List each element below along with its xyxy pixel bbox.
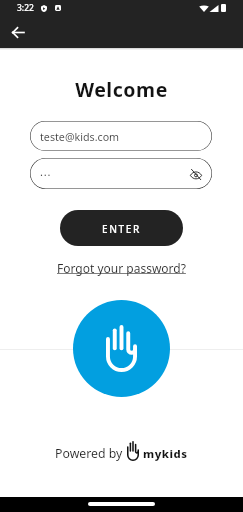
staticText: ENTER	[102, 222, 141, 236]
staticText: Powered by	[55, 445, 123, 462]
button[interactable]: Back	[6, 20, 30, 44]
button[interactable]: teste@kids.com	[30, 121, 212, 151]
staticText: Welcome	[0, 76, 243, 103]
button[interactable]: ...	[30, 158, 212, 189]
button[interactable]: ENTER	[60, 210, 183, 246]
button[interactable]: mykids logo	[73, 300, 170, 397]
staticText: ...	[40, 164, 52, 179]
staticText: mykids	[143, 446, 188, 461]
staticText: teste@kids.com	[40, 130, 120, 145]
staticText: Forgot your password?	[57, 260, 186, 276]
button[interactable]: Show password	[187, 165, 205, 183]
button[interactable]: Forgot your password?	[51, 256, 192, 280]
staticText: 3:22	[17, 2, 34, 14]
